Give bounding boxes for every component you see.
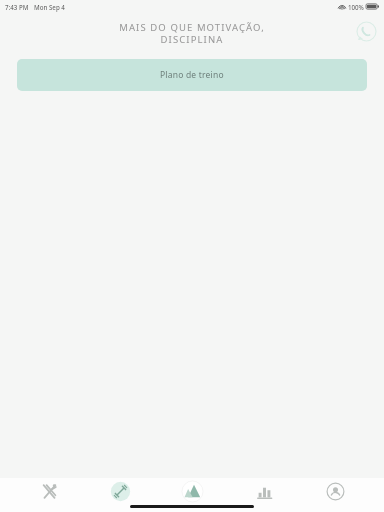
- staticText: Mon Sep 4: [34, 3, 65, 11]
- staticText: Plano de treino: [160, 69, 224, 81]
- button[interactable]: Profile: [312, 478, 358, 504]
- button[interactable]: WhatsApp: [355, 20, 378, 43]
- button[interactable]: Plano de treino: [17, 59, 367, 91]
- staticText: MAIS DO QUE MOTIVAÇÃO, DISCIPLINA: [60, 21, 324, 46]
- button[interactable]: Nutrition: [26, 478, 72, 504]
- button[interactable]: Stats: [241, 478, 287, 504]
- button[interactable]: Home: [169, 478, 215, 504]
- staticText: 100%: [348, 3, 364, 11]
- button[interactable]: Workouts: [97, 478, 143, 504]
- staticText: 7:43 PM: [5, 3, 29, 11]
